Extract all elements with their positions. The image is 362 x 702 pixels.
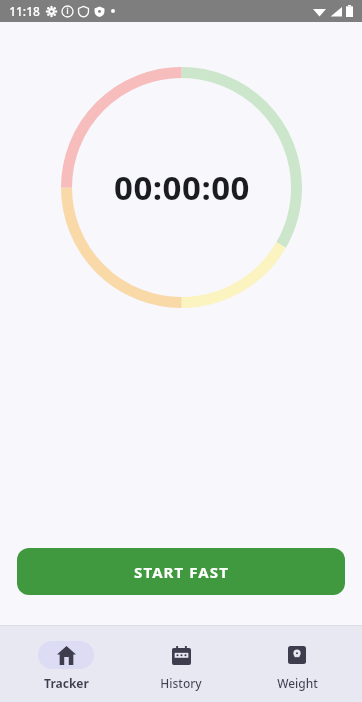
other: History [172,646,191,665]
button[interactable]: Tracker [16,637,116,691]
other: Tracker [57,646,76,665]
staticText: 11:18 [9,3,40,19]
staticText: History [160,675,202,691]
staticText: Tracker [44,675,89,691]
staticText: START FAST [134,562,229,582]
button[interactable]: History [131,637,231,691]
staticText: 00:00:00 [114,165,250,210]
other: Weight [288,646,306,664]
button[interactable]: START FAST [17,548,345,595]
staticText: Weight [277,675,318,691]
button[interactable]: Weight [247,637,347,691]
